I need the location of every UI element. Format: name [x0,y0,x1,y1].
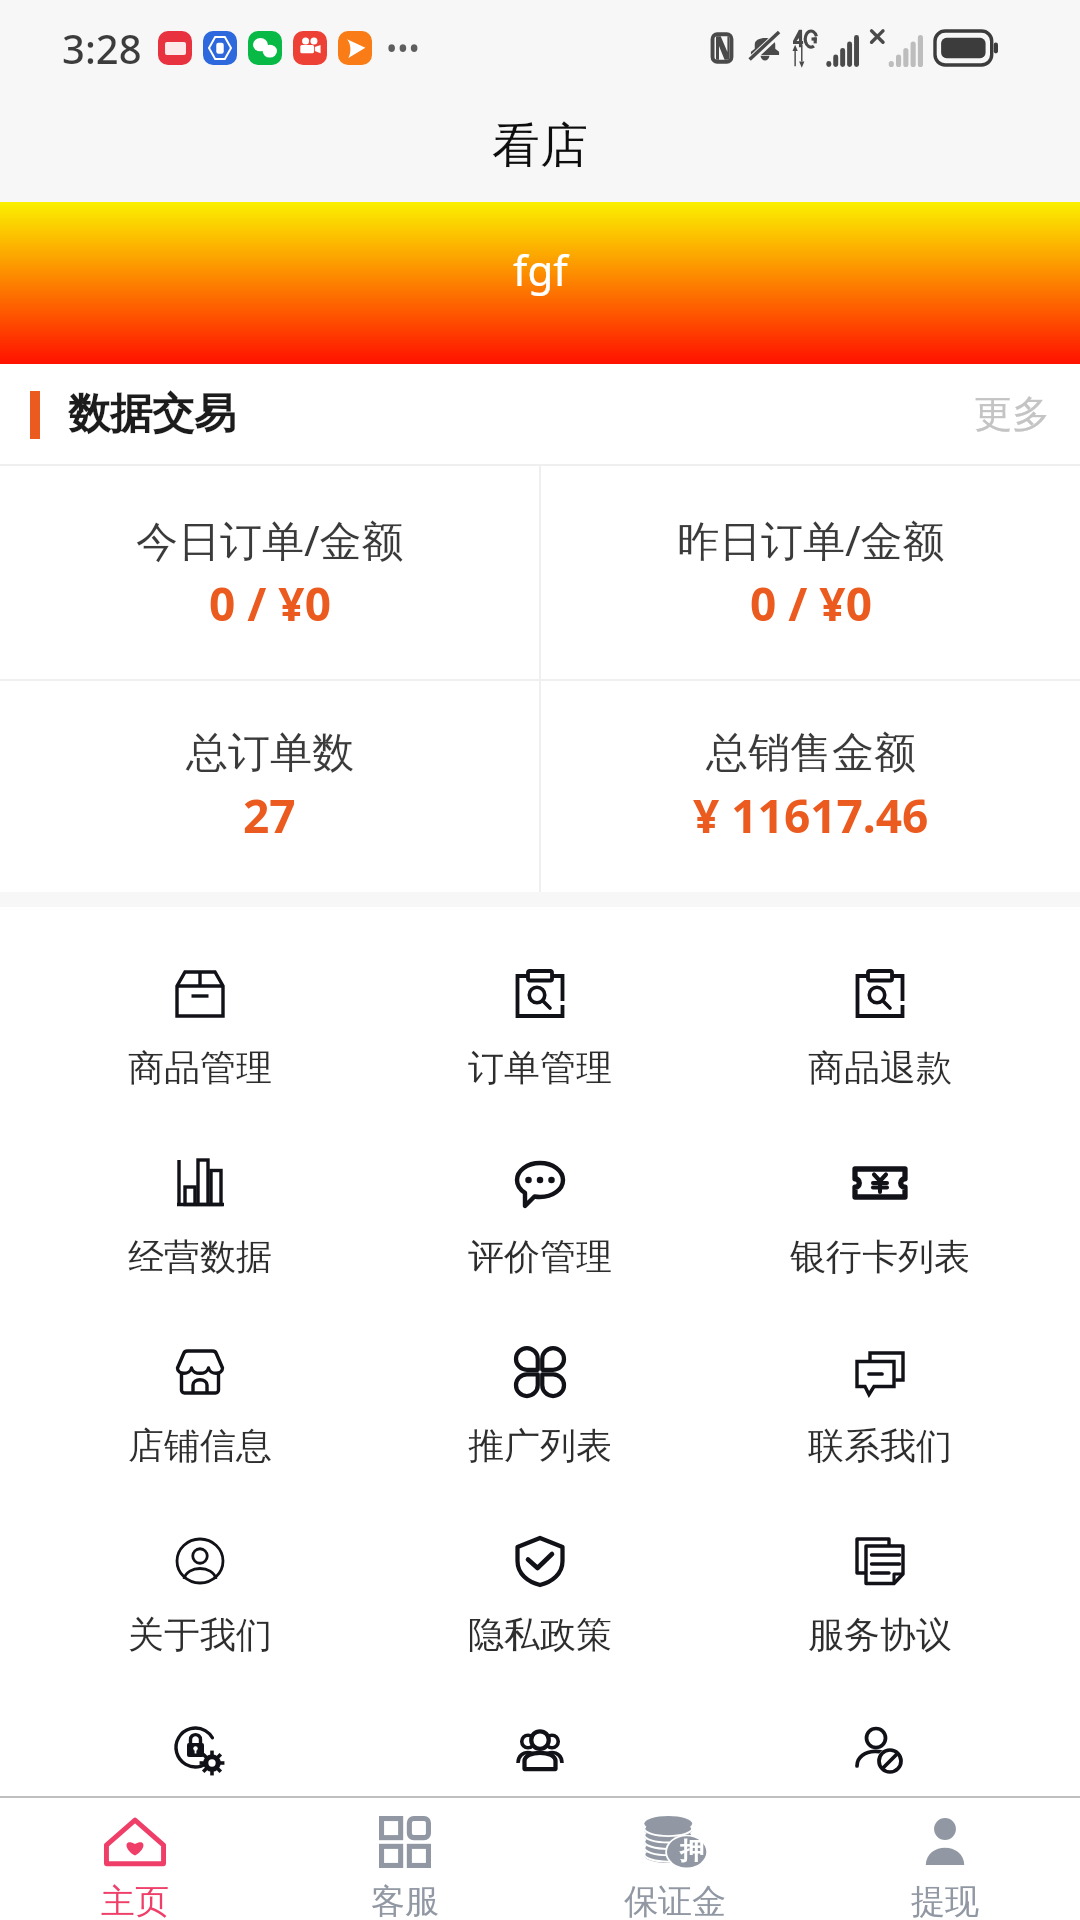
button[interactable]: 订单管理 [370,969,710,1158]
button[interactable]: 经营数据 [30,1158,370,1347]
button[interactable]: 关于我们 [30,1536,370,1725]
staticText: 3:28 [62,21,142,75]
staticText: 关于我们 [128,1612,272,1657]
staticText: 0 / ¥0 [209,572,331,635]
staticText: 昨日订单/金额 [677,511,945,568]
staticText: 银行卡列表 [790,1234,970,1279]
button[interactable]: 押 [540,1798,810,1920]
button[interactable]: 昨日订单/金额 [541,466,1080,679]
button[interactable]: 商品退款 [710,969,1050,1158]
button[interactable]: fgf [0,202,1080,364]
button[interactable]: 主页 [0,1798,270,1920]
button[interactable]: 商品管理 [30,969,370,1158]
staticText: 总销售金额 [706,727,916,780]
staticText: 提现 [911,1880,979,1920]
button[interactable]: 更多 [944,372,1080,456]
staticText: 今日订单/金额 [136,511,404,568]
staticText: 总订单数 [186,727,354,780]
button[interactable]: Block user [710,1725,1050,1795]
staticText: fgf [513,241,568,298]
staticText: 联系我们 [808,1423,952,1468]
staticText: ¥ 11617.46 [693,784,929,847]
button[interactable]: Account security [30,1725,370,1795]
button[interactable]: 客服 [270,1798,540,1920]
staticText: 服务协议 [808,1612,952,1657]
staticText: 数据交易 [68,388,236,441]
staticText: 27 [243,784,296,847]
button[interactable]: 总销售金额 [541,681,1080,892]
staticText: 更多 [974,390,1050,438]
staticText: 押 [680,1836,704,1866]
button[interactable]: 总订单数 [0,681,539,892]
button[interactable]: 提现 [810,1798,1080,1920]
staticText: 店铺信息 [128,1423,272,1468]
staticText: 商品管理 [128,1045,272,1090]
staticText: 保证金 [624,1880,726,1920]
button[interactable]: 隐私政策 [370,1536,710,1725]
staticText: 主页 [101,1880,169,1920]
staticText: ••• [386,28,420,69]
staticText: 看店 [492,116,588,176]
staticText: 商品退款 [808,1045,952,1090]
staticText: 订单管理 [468,1045,612,1090]
button[interactable]: 评价管理 [370,1158,710,1347]
button[interactable]: 联系我们 [710,1347,1050,1536]
staticText: 评价管理 [468,1234,612,1279]
staticText: 隐私政策 [468,1612,612,1657]
staticText: 经营数据 [128,1234,272,1279]
button[interactable]: 店铺信息 [30,1347,370,1536]
staticText: 0 / ¥0 [750,572,872,635]
staticText: 客服 [371,1880,439,1920]
button[interactable]: Team [370,1725,710,1795]
button[interactable]: 服务协议 [710,1536,1050,1725]
button[interactable]: 银行卡列表 [710,1158,1050,1347]
button[interactable]: 今日订单/金额 [0,466,539,679]
staticText: 推广列表 [468,1423,612,1468]
button[interactable]: 推广列表 [370,1347,710,1536]
